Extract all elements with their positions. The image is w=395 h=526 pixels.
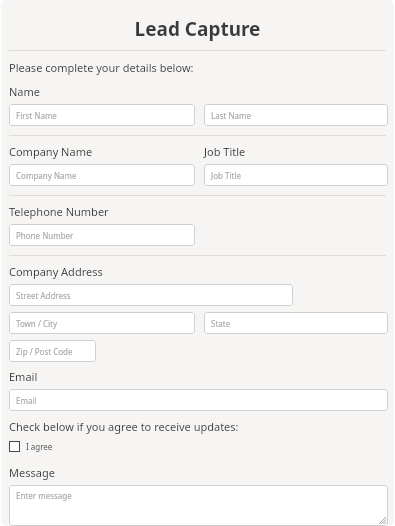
staticText: Telephone Number [9,204,109,219]
staticText: Last Name [211,110,252,121]
button[interactable]: State [204,312,388,334]
staticText: Name [9,84,41,99]
staticText: Company Name [16,170,77,181]
button[interactable]: First Name [9,104,195,126]
staticText: I agree [26,441,53,452]
staticText: Street Address [16,290,71,301]
staticText: Enter message [16,490,72,501]
button[interactable]: Zip / Post Code [9,340,96,362]
button[interactable]: Email [9,389,388,411]
staticText: Lead Capture [1,16,394,42]
button[interactable]: Company Name [9,164,195,186]
staticText: Email [16,395,37,406]
staticText: Phone Number [16,230,74,241]
staticText: Email [9,369,38,384]
button[interactable]: Enter message [9,485,388,526]
button[interactable]: Street Address [9,284,293,306]
staticText: Company Name [9,144,93,159]
button[interactable]: Last Name [204,104,388,126]
staticText: Please complete your details below: [9,60,194,75]
button[interactable]: Job Title [204,164,388,186]
staticText: Zip / Post Code [16,346,73,357]
other: I agree checkbox [9,441,20,452]
button[interactable]: I agree checkbox [9,441,53,452]
staticText: State [211,318,231,329]
button[interactable]: Town / City [9,312,195,334]
staticText: Check below if you agree to receive upda… [9,419,239,434]
staticText: Message [9,465,55,480]
button[interactable]: Phone Number [9,224,195,246]
staticText: Job Title [211,170,241,181]
staticText: Company Address [9,264,103,279]
staticText: Job Title [204,144,246,159]
staticText: Town / City [16,318,58,329]
staticText: First Name [16,110,57,121]
